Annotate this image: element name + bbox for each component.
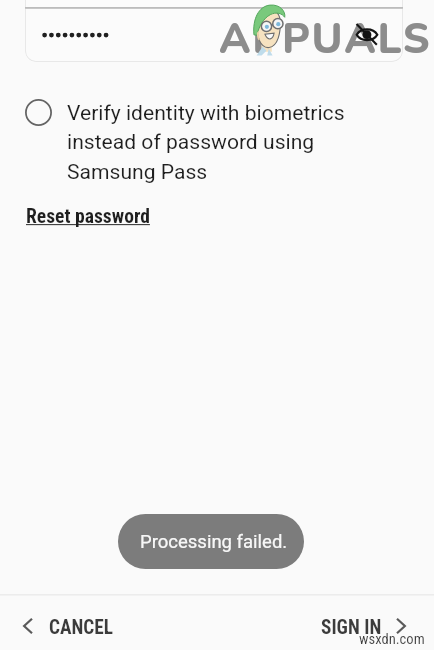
staticText: APPUALS (219, 11, 432, 68)
staticText: wsxdn.com (359, 630, 425, 647)
button[interactable]: CANCEL (8, 596, 128, 650)
staticText: Reset password (26, 205, 150, 228)
staticText: Verify identity with biometrics instead … (67, 100, 407, 185)
button[interactable]: Reset password (26, 205, 150, 228)
button[interactable]: Verify identity with biometrics (25, 99, 52, 126)
button[interactable]: SIGN IN (310, 596, 426, 650)
button[interactable] (25, 8, 403, 62)
button[interactable]: Show password (352, 19, 383, 50)
staticText: CANCEL (49, 616, 114, 639)
staticText: Processing failed. (140, 531, 288, 553)
staticText: SIGN IN (321, 616, 382, 639)
